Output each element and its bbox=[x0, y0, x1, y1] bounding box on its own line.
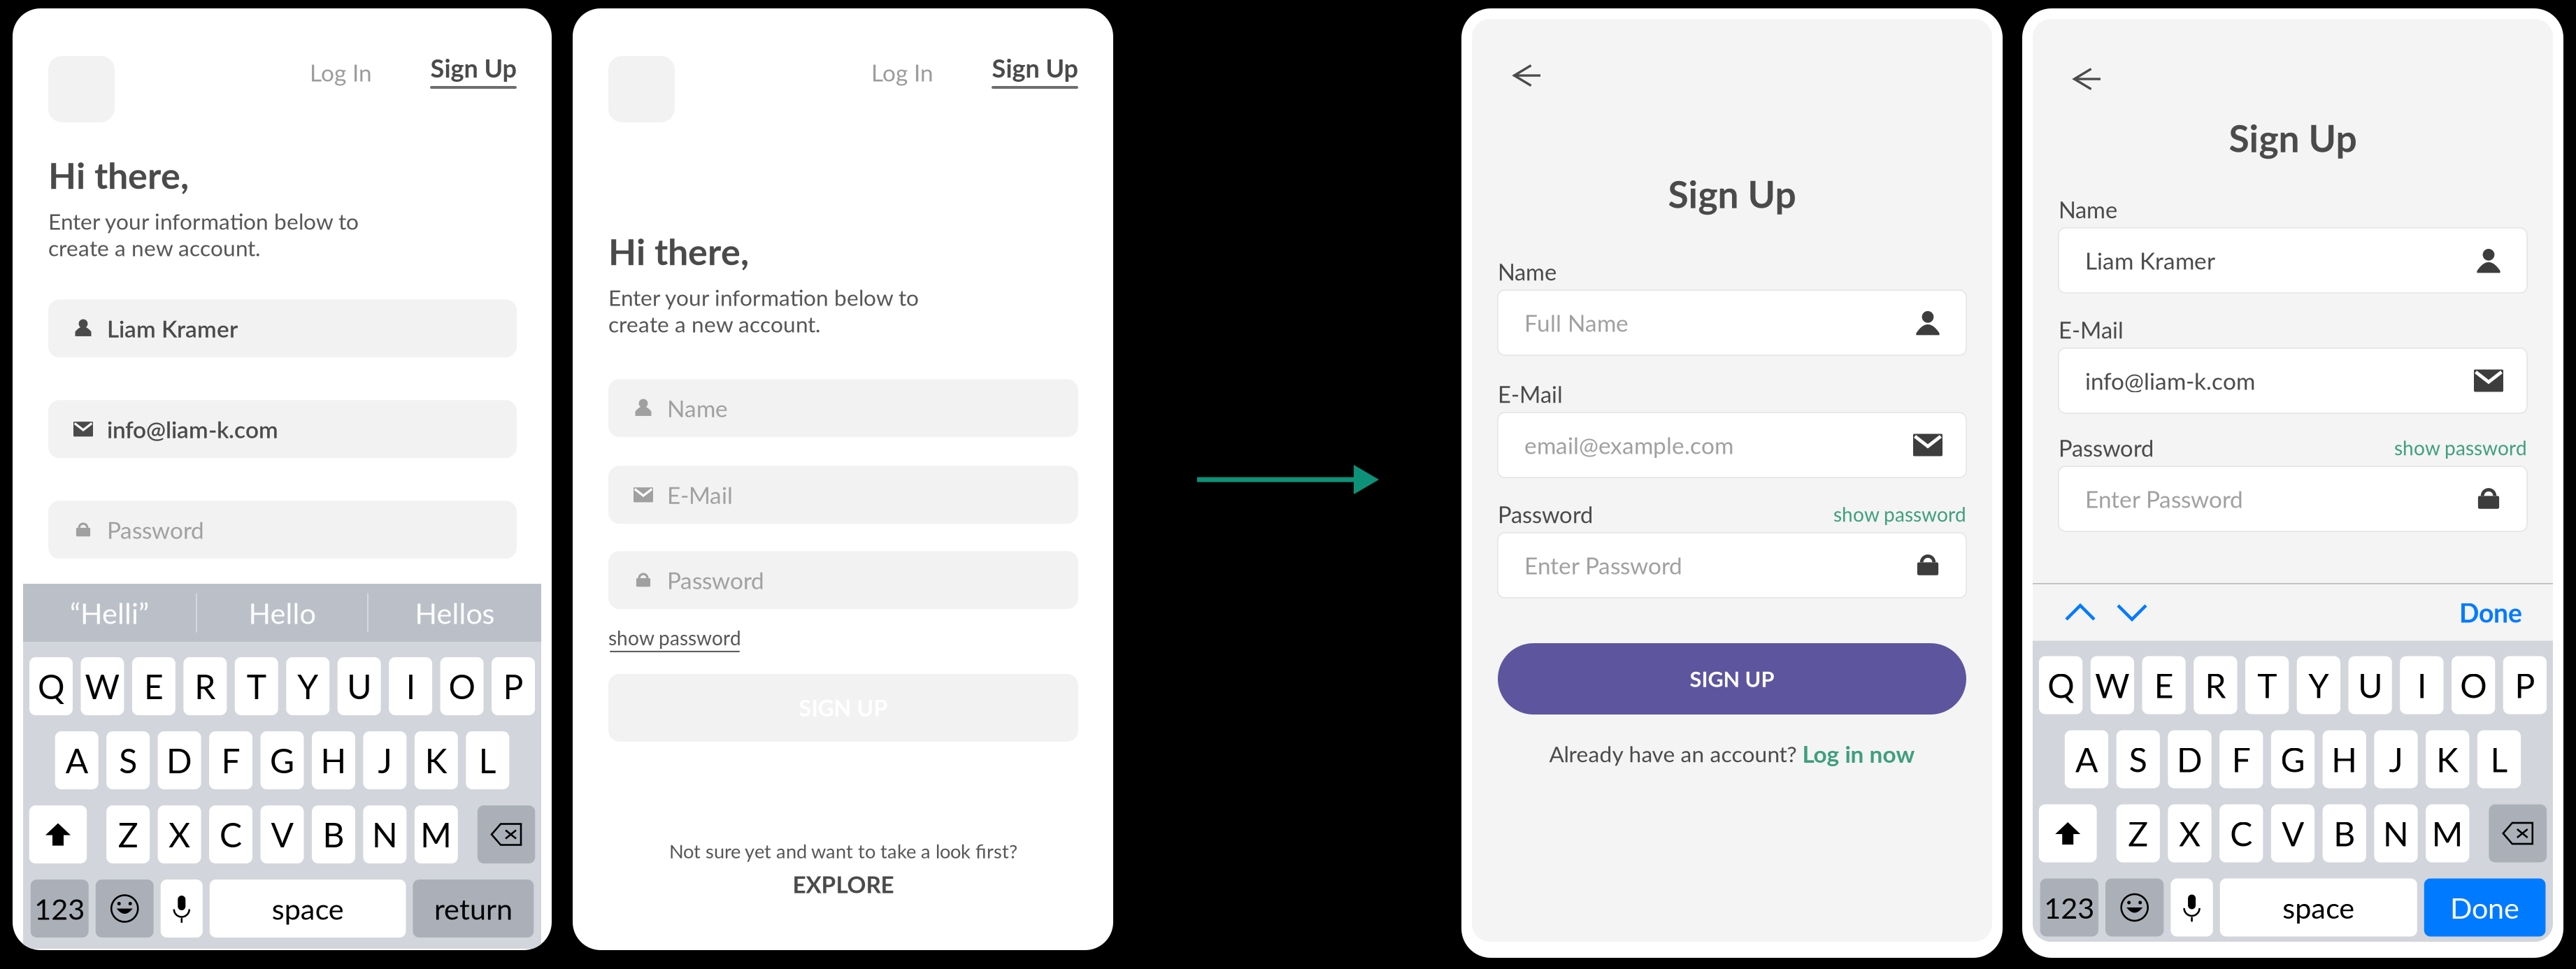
button[interactable]: R bbox=[183, 657, 227, 715]
button[interactable]: Q bbox=[2039, 656, 2082, 714]
button[interactable]: C bbox=[209, 805, 252, 863]
button[interactable]: H bbox=[312, 731, 355, 789]
button[interactable]: K bbox=[415, 731, 458, 789]
button[interactable]: Y bbox=[2297, 656, 2340, 714]
button[interactable]: U bbox=[2348, 656, 2392, 714]
button[interactable]: R bbox=[2194, 656, 2237, 714]
button[interactable]: return bbox=[413, 880, 534, 938]
staticText: O bbox=[449, 666, 475, 706]
button[interactable]: J bbox=[363, 731, 407, 789]
button[interactable]: T bbox=[235, 657, 278, 715]
button[interactable]: D bbox=[158, 731, 201, 789]
button[interactable]: X bbox=[158, 805, 201, 863]
button[interactable]: G bbox=[2271, 730, 2315, 788]
button[interactable]: Back bbox=[1513, 64, 1541, 87]
staticText: L bbox=[479, 740, 496, 780]
button[interactable]: Dictation bbox=[161, 880, 203, 938]
button[interactable]: B bbox=[312, 805, 355, 863]
button[interactable]: W bbox=[81, 657, 124, 715]
button[interactable]: N bbox=[2374, 804, 2418, 862]
button[interactable]: G bbox=[260, 731, 304, 789]
staticText: Password bbox=[2059, 434, 2154, 461]
staticText: W bbox=[2095, 665, 2130, 705]
button[interactable]: show password bbox=[1833, 502, 1966, 526]
button[interactable]: EXPLORE bbox=[793, 870, 894, 898]
button[interactable]: O bbox=[440, 657, 484, 715]
button[interactable]: S bbox=[2116, 730, 2160, 788]
button[interactable]: Z bbox=[2116, 804, 2160, 862]
button[interactable]: H bbox=[2323, 730, 2366, 788]
button[interactable]: E bbox=[132, 657, 175, 715]
staticText: show password bbox=[608, 626, 741, 649]
button[interactable]: L bbox=[466, 731, 509, 789]
staticText: Already have an account? bbox=[1549, 740, 1797, 767]
staticText: G bbox=[270, 740, 294, 780]
staticText: Hellos bbox=[415, 595, 495, 630]
button[interactable]: 123 bbox=[31, 880, 89, 938]
button[interactable]: M bbox=[415, 805, 458, 863]
button[interactable]: space bbox=[2220, 878, 2417, 936]
button[interactable]: I bbox=[389, 657, 432, 715]
button[interactable]: Backspace bbox=[2489, 804, 2547, 862]
button[interactable]: W bbox=[2091, 656, 2134, 714]
button[interactable]: Done bbox=[2459, 597, 2522, 628]
button[interactable]: show password bbox=[608, 626, 741, 652]
button[interactable]: space bbox=[210, 880, 406, 938]
staticText: T bbox=[247, 666, 266, 706]
button[interactable]: SIGN UP bbox=[1498, 643, 1966, 715]
button[interactable]: P bbox=[492, 657, 535, 715]
button[interactable]: O bbox=[2452, 656, 2495, 714]
button[interactable]: Done bbox=[2424, 878, 2546, 936]
button[interactable]: I bbox=[2400, 656, 2443, 714]
button[interactable]: Next field bbox=[2112, 594, 2152, 631]
staticText: Enter your information below to create a… bbox=[48, 208, 359, 261]
staticText: L bbox=[2490, 739, 2508, 779]
button[interactable]: Shift bbox=[29, 805, 87, 863]
button[interactable]: V bbox=[2271, 804, 2315, 862]
button[interactable]: Y bbox=[286, 657, 329, 715]
button[interactable]: F bbox=[209, 731, 252, 789]
button[interactable]: Back bbox=[2073, 68, 2101, 90]
button[interactable]: C bbox=[2219, 804, 2263, 862]
staticText: B bbox=[2334, 813, 2355, 854]
button[interactable]: Log In bbox=[310, 60, 372, 84]
button[interactable]: N bbox=[363, 805, 407, 863]
button[interactable]: Log in now bbox=[1802, 740, 1915, 768]
button[interactable]: E bbox=[2142, 656, 2186, 714]
staticText: Log in now bbox=[1802, 740, 1915, 768]
button[interactable]: U bbox=[338, 657, 381, 715]
button[interactable]: M bbox=[2426, 804, 2469, 862]
button[interactable]: Q bbox=[29, 657, 73, 715]
button[interactable]: Emoji bbox=[2105, 878, 2164, 936]
staticText: SIGN UP bbox=[1690, 666, 1774, 692]
button[interactable]: J bbox=[2374, 730, 2418, 788]
button[interactable]: B bbox=[2323, 804, 2366, 862]
button[interactable]: 123 bbox=[2040, 878, 2098, 936]
button[interactable]: Emoji bbox=[96, 880, 154, 938]
staticText: V bbox=[271, 814, 293, 855]
button[interactable]: Z bbox=[106, 805, 150, 863]
button[interactable]: K bbox=[2426, 730, 2469, 788]
staticText: Enter Password bbox=[2085, 485, 2243, 513]
button[interactable]: A bbox=[55, 731, 98, 789]
button[interactable]: Backspace bbox=[477, 805, 535, 863]
button[interactable]: L bbox=[2477, 730, 2521, 788]
button[interactable]: Previous field bbox=[2061, 594, 2100, 631]
button[interactable]: A bbox=[2065, 730, 2108, 788]
button[interactable]: P bbox=[2503, 656, 2547, 714]
staticText: Name bbox=[667, 394, 728, 422]
button[interactable]: D bbox=[2168, 730, 2211, 788]
button[interactable]: show password bbox=[2394, 436, 2527, 460]
button[interactable]: X bbox=[2168, 804, 2211, 862]
button[interactable]: Sign Up bbox=[992, 56, 1078, 89]
button[interactable]: Sign Up bbox=[430, 56, 517, 89]
button[interactable]: T bbox=[2245, 656, 2289, 714]
button[interactable]: Dictation bbox=[2171, 878, 2213, 936]
button[interactable]: Log In bbox=[871, 60, 933, 84]
staticText: Password bbox=[107, 516, 204, 544]
button[interactable]: Shift bbox=[2039, 804, 2097, 862]
button[interactable]: F bbox=[2219, 730, 2263, 788]
button[interactable]: V bbox=[260, 805, 304, 863]
button[interactable]: S bbox=[106, 731, 150, 789]
